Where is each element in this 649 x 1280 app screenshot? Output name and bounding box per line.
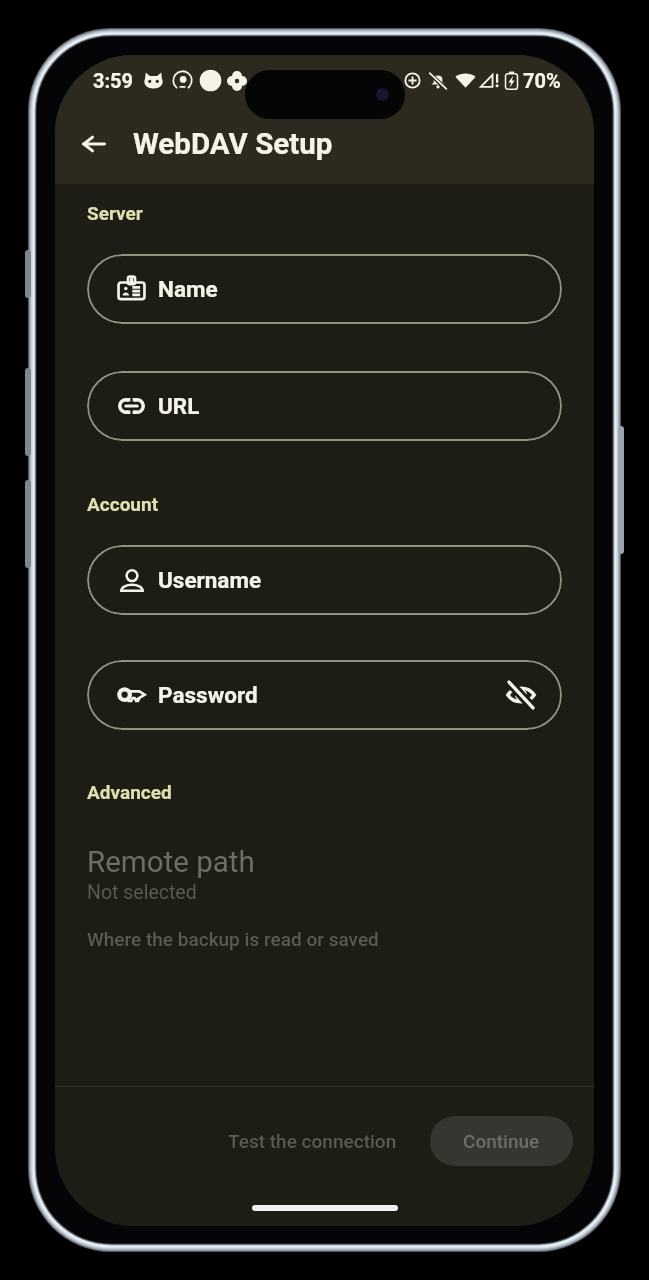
button[interactable]: Continue [430,1116,573,1166]
staticText: Advanced [87,781,172,803]
button[interactable]: Test the connection [212,1116,413,1166]
staticText: 3:59 [93,69,134,92]
staticText: Where the backup is read or saved [87,928,379,950]
staticText: Name [158,276,218,302]
staticText: Continue [463,1130,540,1152]
staticText: URL [158,393,200,419]
staticText: WebDAV Setup [133,127,333,162]
staticText: Remote path [87,845,255,880]
staticText: Account [87,493,159,515]
staticText: Not selected [87,881,197,904]
button[interactable]: Remote path [55,845,594,880]
button[interactable]: Username [87,545,562,615]
button[interactable]: Password [87,660,562,730]
button[interactable]: Show password [501,675,541,715]
button[interactable]: URL [87,371,562,441]
button[interactable]: Name [87,254,562,324]
staticText: Password [158,682,258,708]
button[interactable]: Back [69,119,119,169]
staticText: Test the connection [228,1130,397,1152]
staticText: Username [158,567,262,593]
staticText: 70% [523,69,561,92]
staticText: Server [87,202,143,224]
